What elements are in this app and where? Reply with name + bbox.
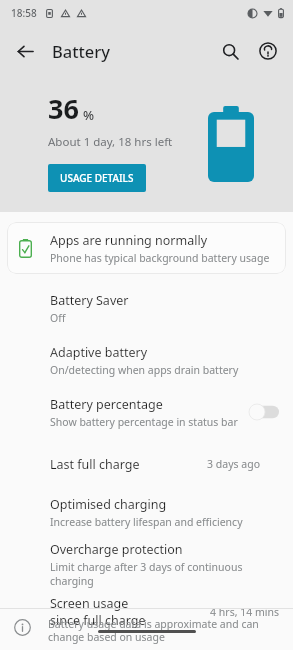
- button[interactable]: Battery percentage: [0, 386, 293, 438]
- staticText: Optimised charging: [50, 496, 167, 513]
- staticText: Apps are running normally: [50, 232, 208, 249]
- staticText: 4 hrs, 14 mins: [169, 605, 279, 619]
- staticText: 3 days ago: [150, 457, 260, 471]
- staticText: Limit charge after 3 days of continuous …: [50, 560, 275, 588]
- staticText: Screen usage since full charge: [50, 595, 159, 629]
- staticText: USAGE DETAILS: [60, 171, 134, 185]
- staticText: Phone has typical background battery usa…: [50, 251, 270, 265]
- staticText: Adaptive battery: [50, 344, 148, 361]
- staticText: Battery usage data is approximate and ca…: [48, 617, 279, 644]
- button[interactable]: USAGE DETAILS: [48, 164, 146, 192]
- button[interactable]: Adaptive battery: [0, 334, 293, 386]
- button[interactable]: Screen usage since full charge: [0, 590, 293, 634]
- staticText: Battery: [52, 40, 111, 62]
- staticText: Increase battery lifespan and efficiency: [50, 515, 243, 529]
- staticText: Overcharge protection: [50, 541, 183, 558]
- button[interactable]: Apps are running normally: [7, 222, 286, 274]
- button[interactable]: Back: [6, 32, 44, 70]
- staticText: Battery Saver: [50, 292, 129, 309]
- staticText: 36: [48, 90, 79, 127]
- button[interactable]: Optimised charging: [0, 486, 293, 538]
- button[interactable]: Battery percentage toggle: [249, 404, 279, 420]
- staticText: %: [83, 106, 95, 124]
- staticText: Show battery percentage in status bar: [50, 415, 238, 429]
- button[interactable]: Battery Saver: [0, 282, 293, 334]
- button[interactable]: Search: [211, 32, 249, 70]
- button[interactable]: Overcharge protection: [0, 538, 293, 590]
- staticText: Off: [50, 311, 66, 325]
- staticText: Last full charge: [50, 456, 140, 473]
- staticText: 18:58: [11, 6, 37, 20]
- staticText: Battery percentage: [50, 396, 163, 413]
- button[interactable]: Last full charge: [0, 442, 293, 486]
- staticText: On/detecting when apps drain battery: [50, 363, 239, 377]
- staticText: About 1 day, 18 hrs left: [48, 134, 173, 150]
- button[interactable]: Help: [249, 32, 287, 70]
